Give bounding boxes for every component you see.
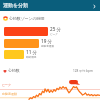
button[interactable]: 11 分 (0, 50, 100, 59)
button[interactable]: Next (91, 3, 97, 9)
staticText: 有酸素運動 (41, 44, 54, 47)
button[interactable]: 運動を分類 (0, 0, 100, 11)
button[interactable]: 19 分 (0, 39, 100, 48)
staticText: 11 分 (26, 49, 38, 55)
staticText: ピーク (50, 32, 58, 35)
staticText: 心拍数 (8, 68, 20, 73)
staticText: 脂肪燃焼 (26, 55, 37, 58)
staticText: 19 分 (41, 38, 53, 44)
button[interactable]: 25 分 (0, 27, 100, 36)
staticText: 運動を分類 (3, 2, 29, 8)
staticText: 有酸素運動 (2, 92, 17, 96)
staticText: ピーク (2, 83, 12, 87)
staticText: 心拍数ゾーンの時間 (9, 16, 45, 21)
staticText: 25 分 (50, 26, 62, 32)
staticText: 128 平均 bpm (73, 69, 93, 73)
